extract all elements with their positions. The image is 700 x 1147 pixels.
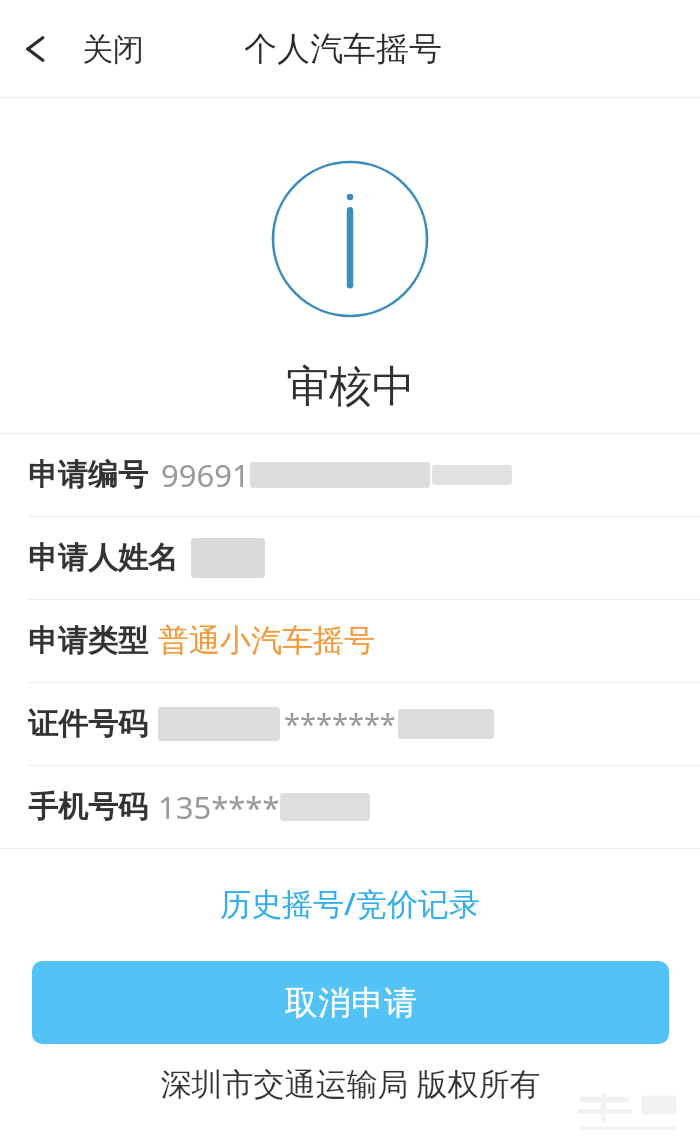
button[interactable]: 取消申请	[32, 961, 669, 1044]
staticText: 申请类型	[28, 622, 148, 660]
staticText: 申请人姓名	[28, 539, 178, 577]
button[interactable]: 历史摇号/竞价记录	[206, 876, 494, 930]
staticText: 135****	[158, 786, 280, 828]
staticText: 99691	[161, 454, 250, 496]
staticText: 个人汽车摇号	[244, 28, 442, 70]
staticText: 申请编号	[28, 456, 148, 494]
staticText: 证件号码	[28, 705, 148, 743]
button[interactable]: 关闭	[82, 30, 144, 69]
staticText: 取消申请	[285, 982, 417, 1024]
staticText: 历史摇号/竞价记录	[220, 882, 480, 924]
staticText: 普通小汽车摇号	[158, 621, 375, 660]
button[interactable]: Back	[6, 19, 66, 79]
staticText: 关闭	[82, 30, 144, 69]
staticText: 深圳市交通运输局 版权所有	[160, 1062, 541, 1104]
staticText: 审核中	[286, 360, 415, 414]
staticText: *******	[284, 704, 396, 743]
staticText: 手机号码	[28, 788, 148, 826]
